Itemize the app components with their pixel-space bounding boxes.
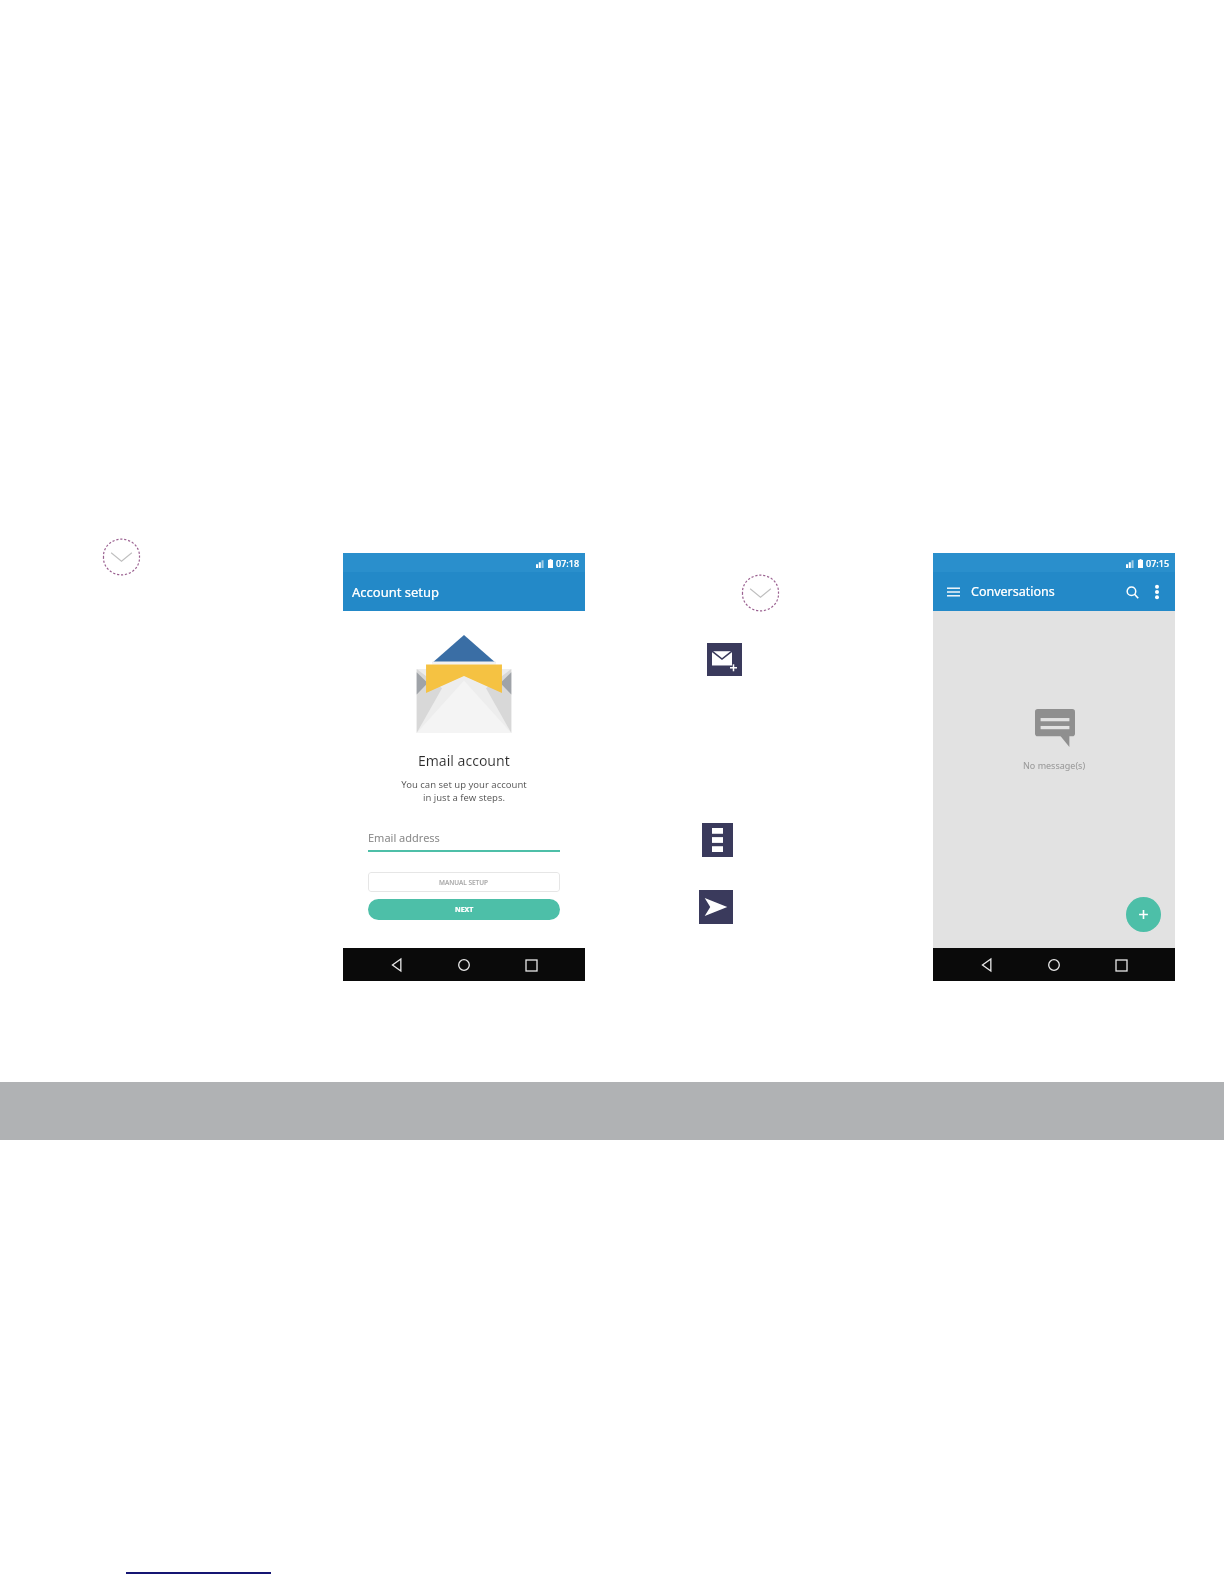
button[interactable]: Recent apps xyxy=(1108,952,1134,978)
button[interactable]: Home xyxy=(1041,952,1067,978)
button[interactable]: Email icon xyxy=(99,536,144,578)
staticText: Conversations xyxy=(971,583,1121,600)
button[interactable]: New conversation xyxy=(1126,897,1161,932)
button[interactable]: Back xyxy=(974,952,1000,978)
staticText: 07:15 xyxy=(1146,557,1170,569)
button[interactable]: Back xyxy=(384,952,410,978)
button[interactable]: Email icon xyxy=(738,572,783,614)
button[interactable]: Recent apps xyxy=(518,952,544,978)
button[interactable]: NEXT xyxy=(368,899,560,920)
button[interactable]: More options xyxy=(1149,584,1165,600)
button[interactable]: Send xyxy=(699,890,733,924)
button[interactable]: Email address xyxy=(368,830,560,852)
staticText: MANUAL SETUP xyxy=(439,878,489,887)
staticText: No message(s) xyxy=(1023,759,1086,771)
staticText: Email address xyxy=(368,830,440,845)
staticText: Account setup xyxy=(352,583,440,601)
staticText: You can set up your account in just a fe… xyxy=(401,778,527,804)
button[interactable]: MANUAL SETUP xyxy=(368,872,560,892)
staticText: NEXT xyxy=(455,905,474,915)
button[interactable]: New email xyxy=(707,643,742,676)
button[interactable]: More options xyxy=(702,823,733,857)
staticText: Email account xyxy=(418,751,510,770)
staticText: 07:18 xyxy=(556,557,580,569)
button[interactable]: Search xyxy=(1121,581,1143,603)
button[interactable]: Open navigation drawer xyxy=(943,582,963,602)
button[interactable]: Home xyxy=(451,952,477,978)
